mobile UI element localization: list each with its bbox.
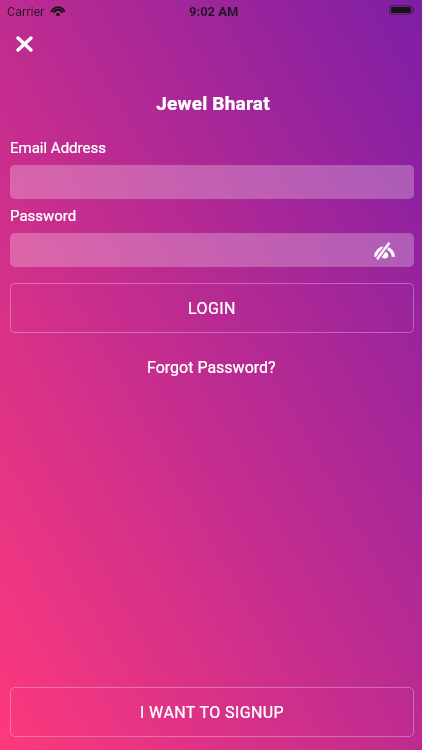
staticText: Jewel Bharat <box>2 92 422 114</box>
button[interactable]: Close <box>8 27 41 60</box>
button[interactable]: Forgot Password? <box>135 352 288 383</box>
button[interactable]: LOGIN <box>10 283 414 333</box>
staticText: I WANT TO SIGNUP <box>140 703 285 722</box>
staticText: Password <box>10 207 77 225</box>
button[interactable]: I WANT TO SIGNUP <box>10 687 414 737</box>
button[interactable]: Show password <box>10 233 414 267</box>
staticText: Carrier <box>7 4 45 19</box>
staticText: Forgot Password? <box>147 358 276 377</box>
button[interactable] <box>10 165 414 199</box>
button[interactable]: Show password <box>369 235 399 265</box>
staticText: 9:02 AM <box>189 4 239 19</box>
staticText: Email Address <box>10 139 106 157</box>
staticText: LOGIN <box>188 299 236 318</box>
